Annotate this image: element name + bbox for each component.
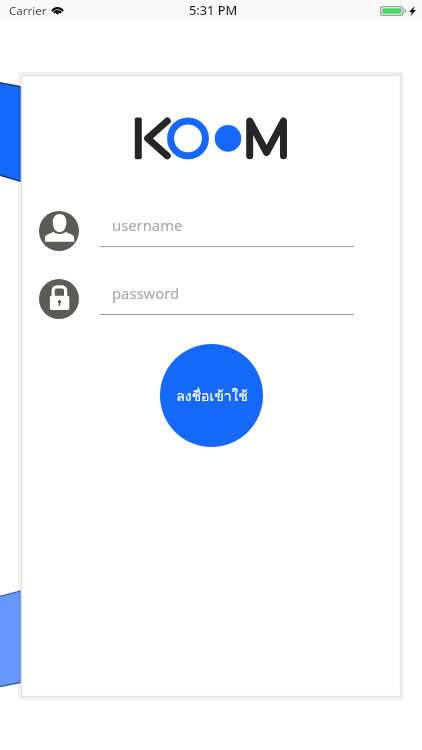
staticText: ลงชื่อเข้าใช้ [176,385,248,407]
button[interactable]: Account [39,211,79,251]
staticText: password [112,283,180,303]
button[interactable]: password [100,287,354,315]
staticText: username [112,215,183,235]
staticText: Carrier [9,3,47,19]
button[interactable]: Password [39,279,79,319]
staticText: 5:31 PM [189,1,238,18]
button[interactable]: ลงชื่อเข้าใช้ [160,344,263,447]
button[interactable]: username [100,219,354,247]
